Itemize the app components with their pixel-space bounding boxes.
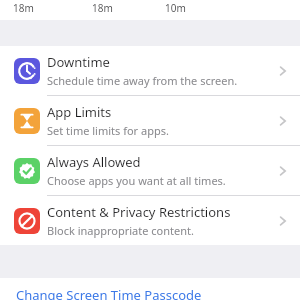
other: Always Allowed (14, 158, 40, 184)
other: Open (278, 214, 288, 228)
staticText: Set time limits for apps. (47, 123, 169, 138)
staticText: Downtime (47, 53, 110, 71)
staticText: Content & Privacy Restrictions (47, 203, 231, 221)
staticText: Block inappropriate content. (47, 223, 194, 238)
staticText: Change Screen Time Passcode (16, 286, 202, 300)
button[interactable]: Change Screen Time Passcode (0, 278, 300, 300)
other: Open (278, 64, 288, 78)
button[interactable]: App Limits (0, 96, 300, 146)
button[interactable]: Always Allowed (0, 146, 300, 196)
other: Downtime (14, 58, 40, 84)
staticText: 18m (13, 1, 34, 15)
other: App Limits (14, 108, 40, 134)
other: Open (278, 164, 288, 178)
staticText: Always Allowed (47, 153, 141, 171)
staticText: App Limits (47, 103, 112, 121)
staticText: Schedule time away from the screen. (47, 73, 238, 88)
other: Content and Privacy Restrictions (14, 208, 40, 234)
staticText: 18m (92, 1, 113, 15)
staticText: Choose apps you want at all times. (47, 173, 226, 188)
staticText: 10m (165, 1, 186, 15)
other: Open (278, 114, 288, 128)
button[interactable]: Content and Privacy Restrictions (0, 196, 300, 245)
button[interactable]: Downtime (0, 46, 300, 96)
